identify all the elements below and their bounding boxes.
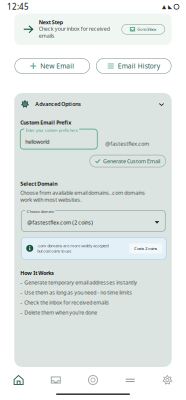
staticText: .com domains are more widely accepted bu… — [37, 243, 108, 254]
staticText: Generate temporary email addresses insta… — [24, 279, 137, 286]
button[interactable]: Settings — [149, 370, 186, 390]
staticText: · — [20, 279, 22, 288]
button[interactable]: Inbox — [37, 370, 74, 390]
staticText: ▲ — [162, 4, 166, 10]
staticText: Custom Email Prefix — [20, 119, 71, 126]
staticText: Choose from available email domains. .co… — [20, 189, 145, 203]
staticText: Generate Custom Email — [103, 157, 160, 165]
staticText: · — [20, 289, 22, 298]
staticText: Check the inbox for received emails — [24, 299, 109, 306]
staticText: Go to Inbox — [137, 27, 156, 32]
button[interactable]: Coins — [74, 370, 112, 390]
staticText: Enter your custom prefix here — [26, 128, 78, 133]
button[interactable]: Email History — [96, 58, 171, 73]
staticText: Delete them when you're done — [24, 309, 97, 316]
staticText: Email History — [118, 62, 160, 70]
button[interactable]: @fastestflex.com (2 coins) — [21, 210, 165, 231]
button[interactable]: New Email — [15, 58, 90, 73]
staticText: How It Works — [20, 269, 54, 276]
staticText: 12:45 — [7, 1, 29, 12]
staticText: Select Domain — [20, 180, 57, 187]
staticText: ◣ — [168, 4, 172, 10]
staticText: Check your inbox for received emails — [39, 25, 110, 39]
staticText: Advanced Options — [35, 100, 81, 108]
staticText: Use them as long as you need - no time l… — [24, 289, 132, 296]
button[interactable]: History — [112, 370, 149, 390]
staticText: @fastestflex.com — [105, 140, 149, 147]
staticText: · — [20, 309, 22, 318]
button[interactable]: Home — [0, 370, 37, 390]
staticText: · — [20, 299, 22, 308]
staticText: @fastestflex.com (2 coins) — [27, 219, 93, 226]
staticText: New Email — [40, 62, 74, 70]
staticText: Costs 2 coins — [134, 246, 157, 251]
button[interactable]: Go to Inbox — [122, 24, 165, 34]
staticText: Choose domain — [27, 209, 54, 214]
staticText: Next Step — [39, 19, 63, 26]
staticText: helloworld — [25, 138, 49, 145]
button[interactable]: Generate Custom Email — [90, 155, 166, 167]
